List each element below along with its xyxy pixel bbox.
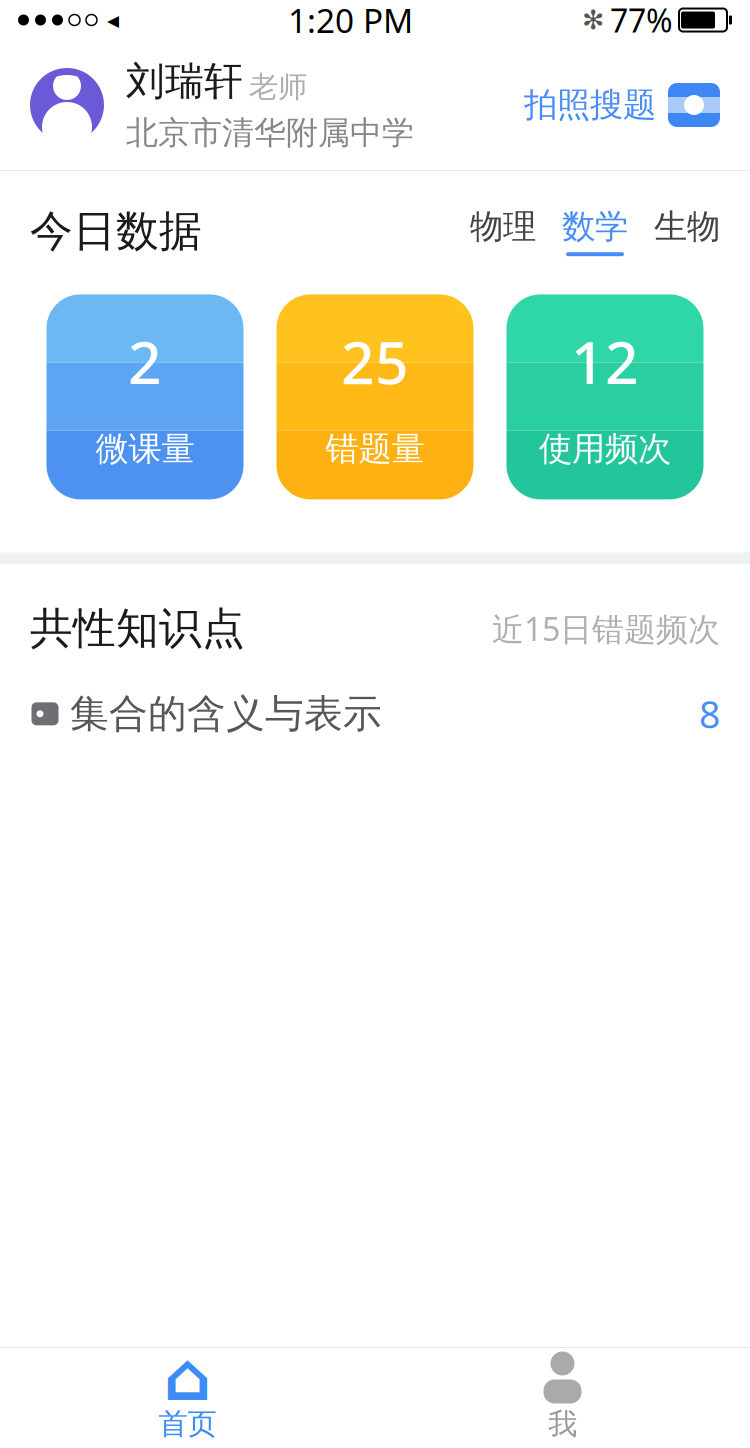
staticText: 拍照搜题 xyxy=(524,84,656,125)
staticText: 今日数据 xyxy=(30,205,202,257)
staticText: 使用频次 xyxy=(539,428,671,469)
staticText: 生物 xyxy=(654,206,720,247)
staticText: 12 xyxy=(571,322,639,400)
button[interactable]: 2 xyxy=(46,294,243,499)
staticText: 物理 xyxy=(470,206,536,247)
staticText: 刘瑞轩 xyxy=(126,58,243,105)
staticText: 老师 xyxy=(249,69,307,105)
staticText: 25 xyxy=(341,322,409,400)
staticText: 北京市清华附属中学 xyxy=(126,113,414,152)
button[interactable]: 12 xyxy=(506,294,703,499)
staticText: 我 xyxy=(548,1406,577,1442)
button[interactable]: 数学 xyxy=(562,206,628,256)
staticText: 2 xyxy=(128,322,162,400)
staticText: 77% xyxy=(610,0,673,41)
staticText: 数学 xyxy=(562,206,628,247)
staticText: 集合的含义与表示 xyxy=(70,690,382,738)
button[interactable]: ⌂ xyxy=(0,1344,375,1448)
staticText: 近15日错题频次 xyxy=(492,607,720,650)
staticText: 微课量 xyxy=(95,428,194,469)
button[interactable]: 拍照搜题 xyxy=(524,82,720,128)
staticText: 错题量 xyxy=(325,428,424,469)
button[interactable]: 物理 xyxy=(470,206,536,256)
staticText: ◂ xyxy=(107,6,119,34)
button[interactable]: 生物 xyxy=(654,206,720,256)
staticText: ✻ xyxy=(582,5,604,35)
staticText: 首页 xyxy=(158,1406,216,1442)
staticText: 共性知识点 xyxy=(30,602,245,655)
staticText: 1:20 PM xyxy=(288,0,413,42)
staticText: ⌂ xyxy=(163,1339,211,1415)
button[interactable]: 25 xyxy=(276,294,473,499)
staticText: 8 xyxy=(699,689,720,739)
button[interactable]: 我 xyxy=(375,1344,750,1448)
button[interactable]: 集合的含义与表示 xyxy=(0,679,750,749)
